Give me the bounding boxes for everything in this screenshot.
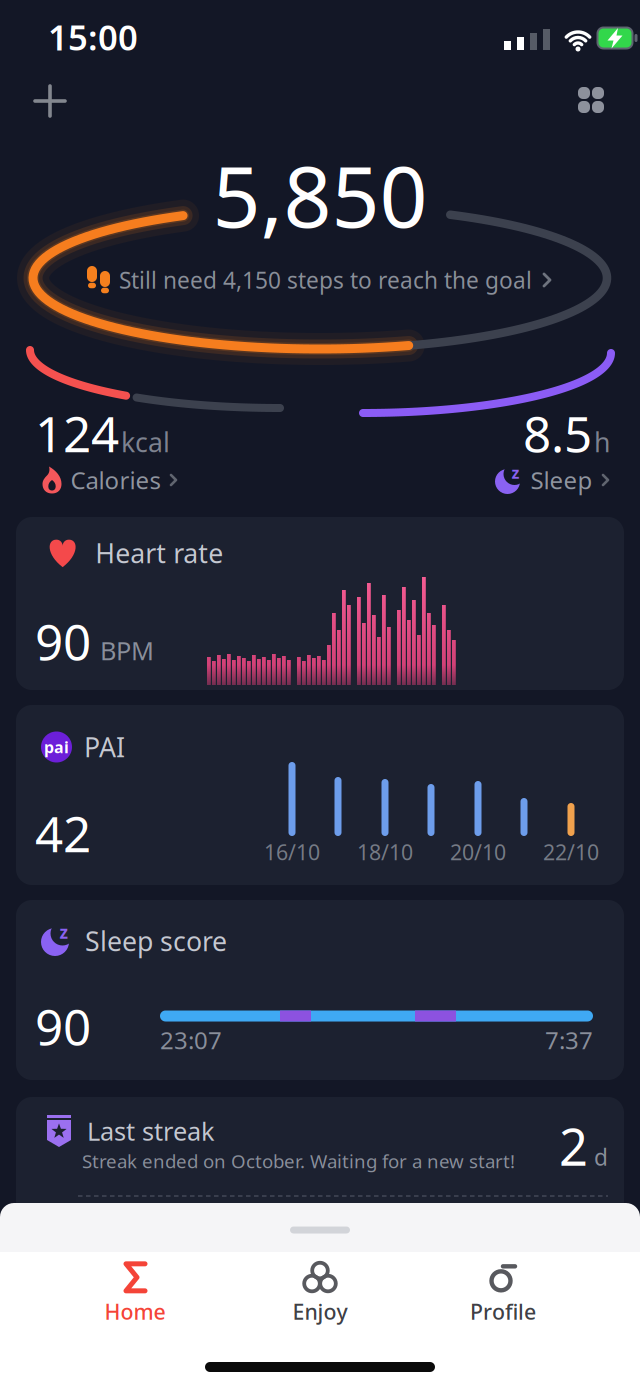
button[interactable]: Cards — [558, 67, 624, 133]
staticText: 90 — [35, 993, 91, 1059]
staticText: 22/10 — [543, 838, 599, 866]
button[interactable]: Home — [104, 1262, 165, 1326]
staticText: Still need 4,150 steps to reach the goal — [119, 265, 532, 295]
staticText: 2 — [559, 1112, 588, 1180]
staticText: 23:07 — [160, 1024, 222, 1056]
staticText: BPM — [100, 633, 154, 667]
staticText: Enjoy — [292, 1297, 347, 1326]
staticText: d — [594, 1142, 608, 1172]
staticText: Heart rate — [95, 535, 223, 571]
staticText: h — [594, 424, 610, 459]
staticText: 8.5 — [523, 400, 592, 466]
staticText: 20/10 — [450, 838, 506, 866]
staticText: Streak ended on October. Waiting for a n… — [82, 1149, 515, 1173]
staticText: z — [511, 462, 519, 483]
button[interactable]: pai — [16, 705, 624, 885]
staticText: PAI — [84, 729, 125, 765]
staticText: Home — [104, 1297, 165, 1326]
staticText: 124 — [35, 400, 119, 466]
staticText: 16/10 — [264, 838, 320, 866]
button[interactable]: Still need 4,150 steps to reach the goal — [87, 265, 553, 295]
button[interactable]: z — [16, 900, 624, 1080]
staticText: 42 — [35, 800, 91, 866]
button[interactable]: Profile — [470, 1262, 536, 1326]
staticText: Last streak — [87, 1114, 215, 1148]
button[interactable]: Enjoy — [292, 1262, 347, 1326]
staticText: 18/10 — [357, 838, 413, 866]
button[interactable]: Add — [15, 66, 85, 136]
staticText: 90 — [35, 608, 91, 674]
staticText: Profile — [470, 1297, 536, 1326]
button[interactable]: Heart rate — [16, 517, 624, 690]
staticText: 7:37 — [545, 1024, 593, 1056]
staticText: pai — [44, 736, 69, 758]
staticText: z — [59, 920, 68, 943]
button[interactable]: Last streak — [16, 1097, 624, 1217]
staticText: Calories — [70, 464, 160, 496]
staticText: 15:00 — [48, 14, 138, 60]
button[interactable]: Calories — [41, 464, 178, 496]
staticText: 5,850 — [212, 139, 427, 251]
staticText: Sleep — [530, 464, 592, 496]
staticText: kcal — [121, 424, 170, 459]
staticText: Sleep score — [85, 923, 227, 959]
button[interactable]: z — [495, 464, 610, 496]
